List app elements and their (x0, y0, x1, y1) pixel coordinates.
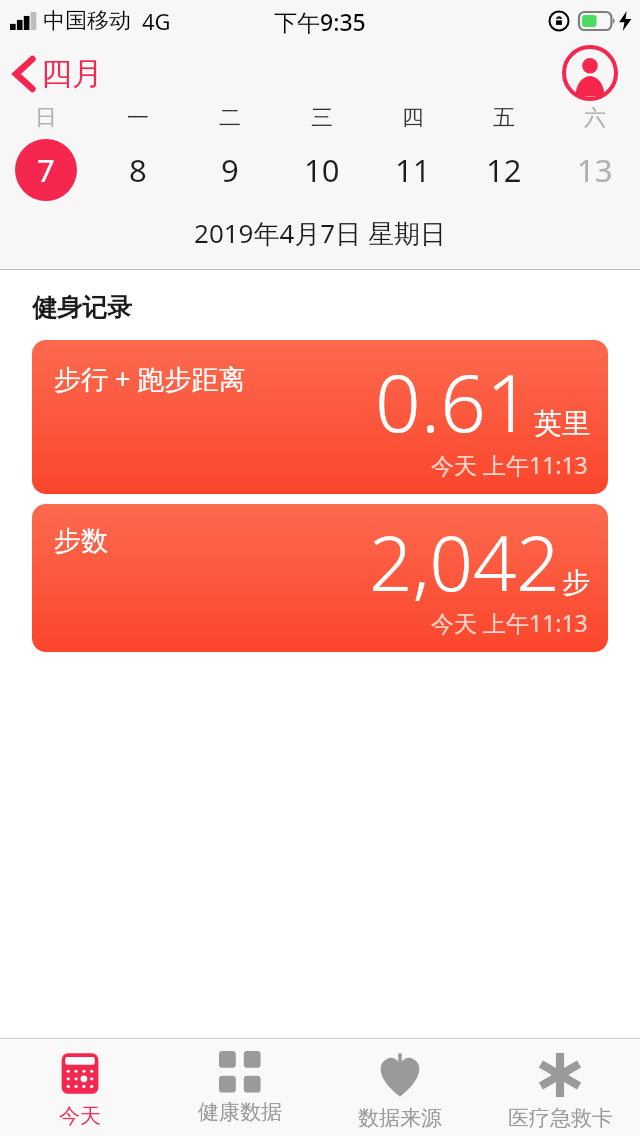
staticText: 健康数据 (198, 1099, 282, 1125)
button[interactable]: 11 (367, 137, 458, 203)
staticText: 医疗急救卡 (508, 1105, 613, 1131)
button[interactable]: 数据来源 (320, 1039, 480, 1136)
button[interactable]: 12 (458, 137, 549, 203)
staticText: 今天 (59, 1103, 101, 1129)
staticText: 今天 上午11:13 (431, 449, 588, 480)
button[interactable]: 步数 (32, 504, 608, 652)
staticText: 今天 上午11:13 (431, 607, 588, 638)
staticText: 9 (221, 149, 239, 191)
button[interactable]: 步行 + 跑步距离 (32, 340, 608, 494)
staticText: 六 (584, 104, 606, 132)
staticText: 英里 (534, 406, 590, 441)
staticText: 健身记录 (32, 292, 132, 323)
staticText: 10 (304, 149, 340, 191)
button[interactable]: 7 (0, 137, 92, 203)
staticText: 8 (129, 149, 147, 191)
button[interactable]: 四月 (0, 48, 117, 99)
staticText: 13 (577, 149, 613, 191)
staticText: 12 (486, 149, 522, 191)
button[interactable]: 健康数据 (160, 1039, 320, 1136)
staticText: 0.61 (375, 346, 532, 455)
staticText: 五 (493, 104, 515, 132)
button[interactable]: 8 (92, 137, 184, 203)
staticText: 2019年4月7日 星期日 (0, 215, 640, 251)
staticText: 日 (35, 104, 57, 132)
button[interactable]: 10 (276, 137, 367, 203)
staticText: 一 (127, 104, 149, 132)
staticText: 2,042 (369, 510, 560, 614)
button[interactable]: 个人资料 (562, 45, 618, 101)
staticText: 步数 (54, 524, 108, 558)
staticText: 7 (37, 149, 55, 191)
button[interactable]: 13 (549, 137, 640, 203)
staticText: 步行 + 跑步距离 (54, 360, 246, 397)
staticText: 下午9:35 (274, 6, 366, 37)
staticText: 四月 (41, 54, 103, 93)
staticText: 4G (142, 6, 171, 36)
button[interactable]: 医疗急救卡 (480, 1039, 640, 1136)
button[interactable]: 今天 (0, 1039, 160, 1136)
staticText: 三 (311, 104, 333, 132)
staticText: 二 (219, 104, 241, 132)
staticText: 四 (402, 104, 424, 132)
staticText: 数据来源 (358, 1105, 442, 1131)
staticText: 中国移动 (43, 7, 131, 35)
staticText: 11 (395, 149, 431, 191)
button[interactable]: 9 (184, 137, 276, 203)
staticText: 步 (562, 565, 590, 600)
